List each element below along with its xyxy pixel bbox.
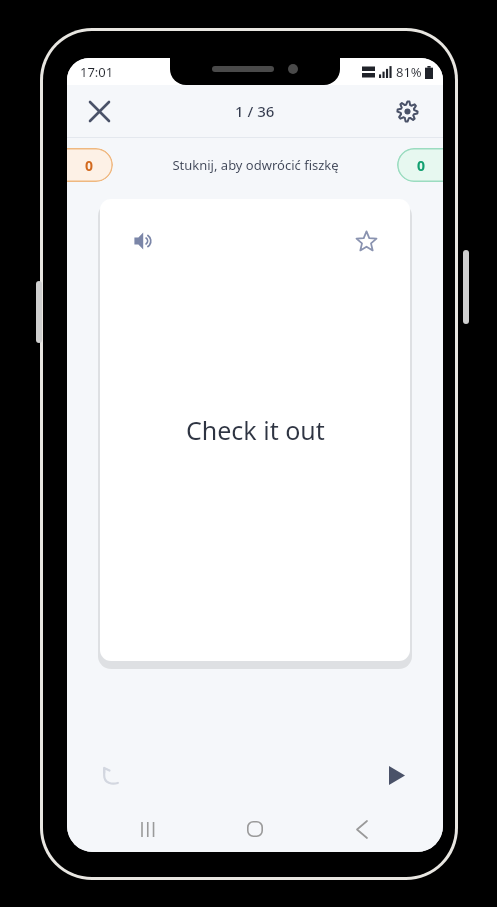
- button[interactable]: Recent apps: [122, 806, 174, 852]
- staticText: 81%: [396, 63, 422, 81]
- button[interactable]: 0: [397, 148, 443, 182]
- button[interactable]: Undo: [93, 755, 133, 795]
- button[interactable]: Settings: [387, 91, 427, 131]
- button[interactable]: Favorite: [350, 225, 382, 257]
- button[interactable]: Home: [229, 806, 281, 852]
- button[interactable]: Back: [336, 806, 388, 852]
- button[interactable]: 0: [67, 148, 113, 182]
- staticText: Stuknij, aby odwrócić fiszkę: [172, 156, 339, 174]
- staticText: 0: [417, 156, 426, 175]
- button[interactable]: Next: [377, 755, 417, 795]
- staticText: 0: [85, 156, 94, 175]
- staticText: 17:01: [80, 63, 114, 81]
- button[interactable]: Close: [79, 91, 119, 131]
- staticText: 1 / 36: [235, 101, 275, 121]
- staticText: Check it out: [186, 413, 325, 447]
- button[interactable]: Play audio: [128, 225, 160, 257]
- button[interactable]: Play audio: [100, 199, 410, 661]
